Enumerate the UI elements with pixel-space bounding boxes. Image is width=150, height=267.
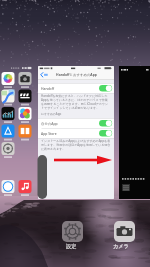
- button[interactable]: HandoffとおすすめのApp: [38, 66, 114, 199]
- button[interactable]: カメラ: [114, 221, 135, 242]
- staticText: Handoffを有効にすると、ハンドオフに対応したAppを使っているときに、ほか…: [41, 94, 109, 110]
- staticText: 設定: [66, 243, 77, 250]
- staticText: おすすめのApp: [41, 112, 62, 116]
- staticText: Handoff: [41, 86, 54, 91]
- button[interactable]: [119, 66, 150, 199]
- staticText: App Store: [41, 131, 57, 136]
- button[interactable]: [0, 0, 150, 267]
- button[interactable]: 設定: [62, 221, 83, 242]
- staticText: インストール済みのAppおよびおすすめのAppを表示します。利用中の項目がApp…: [41, 139, 111, 151]
- staticText: 自分のApp: [41, 121, 58, 126]
- staticText: カメラ: [113, 243, 129, 250]
- staticText: HandoffとおすすめのApp: [56, 72, 97, 77]
